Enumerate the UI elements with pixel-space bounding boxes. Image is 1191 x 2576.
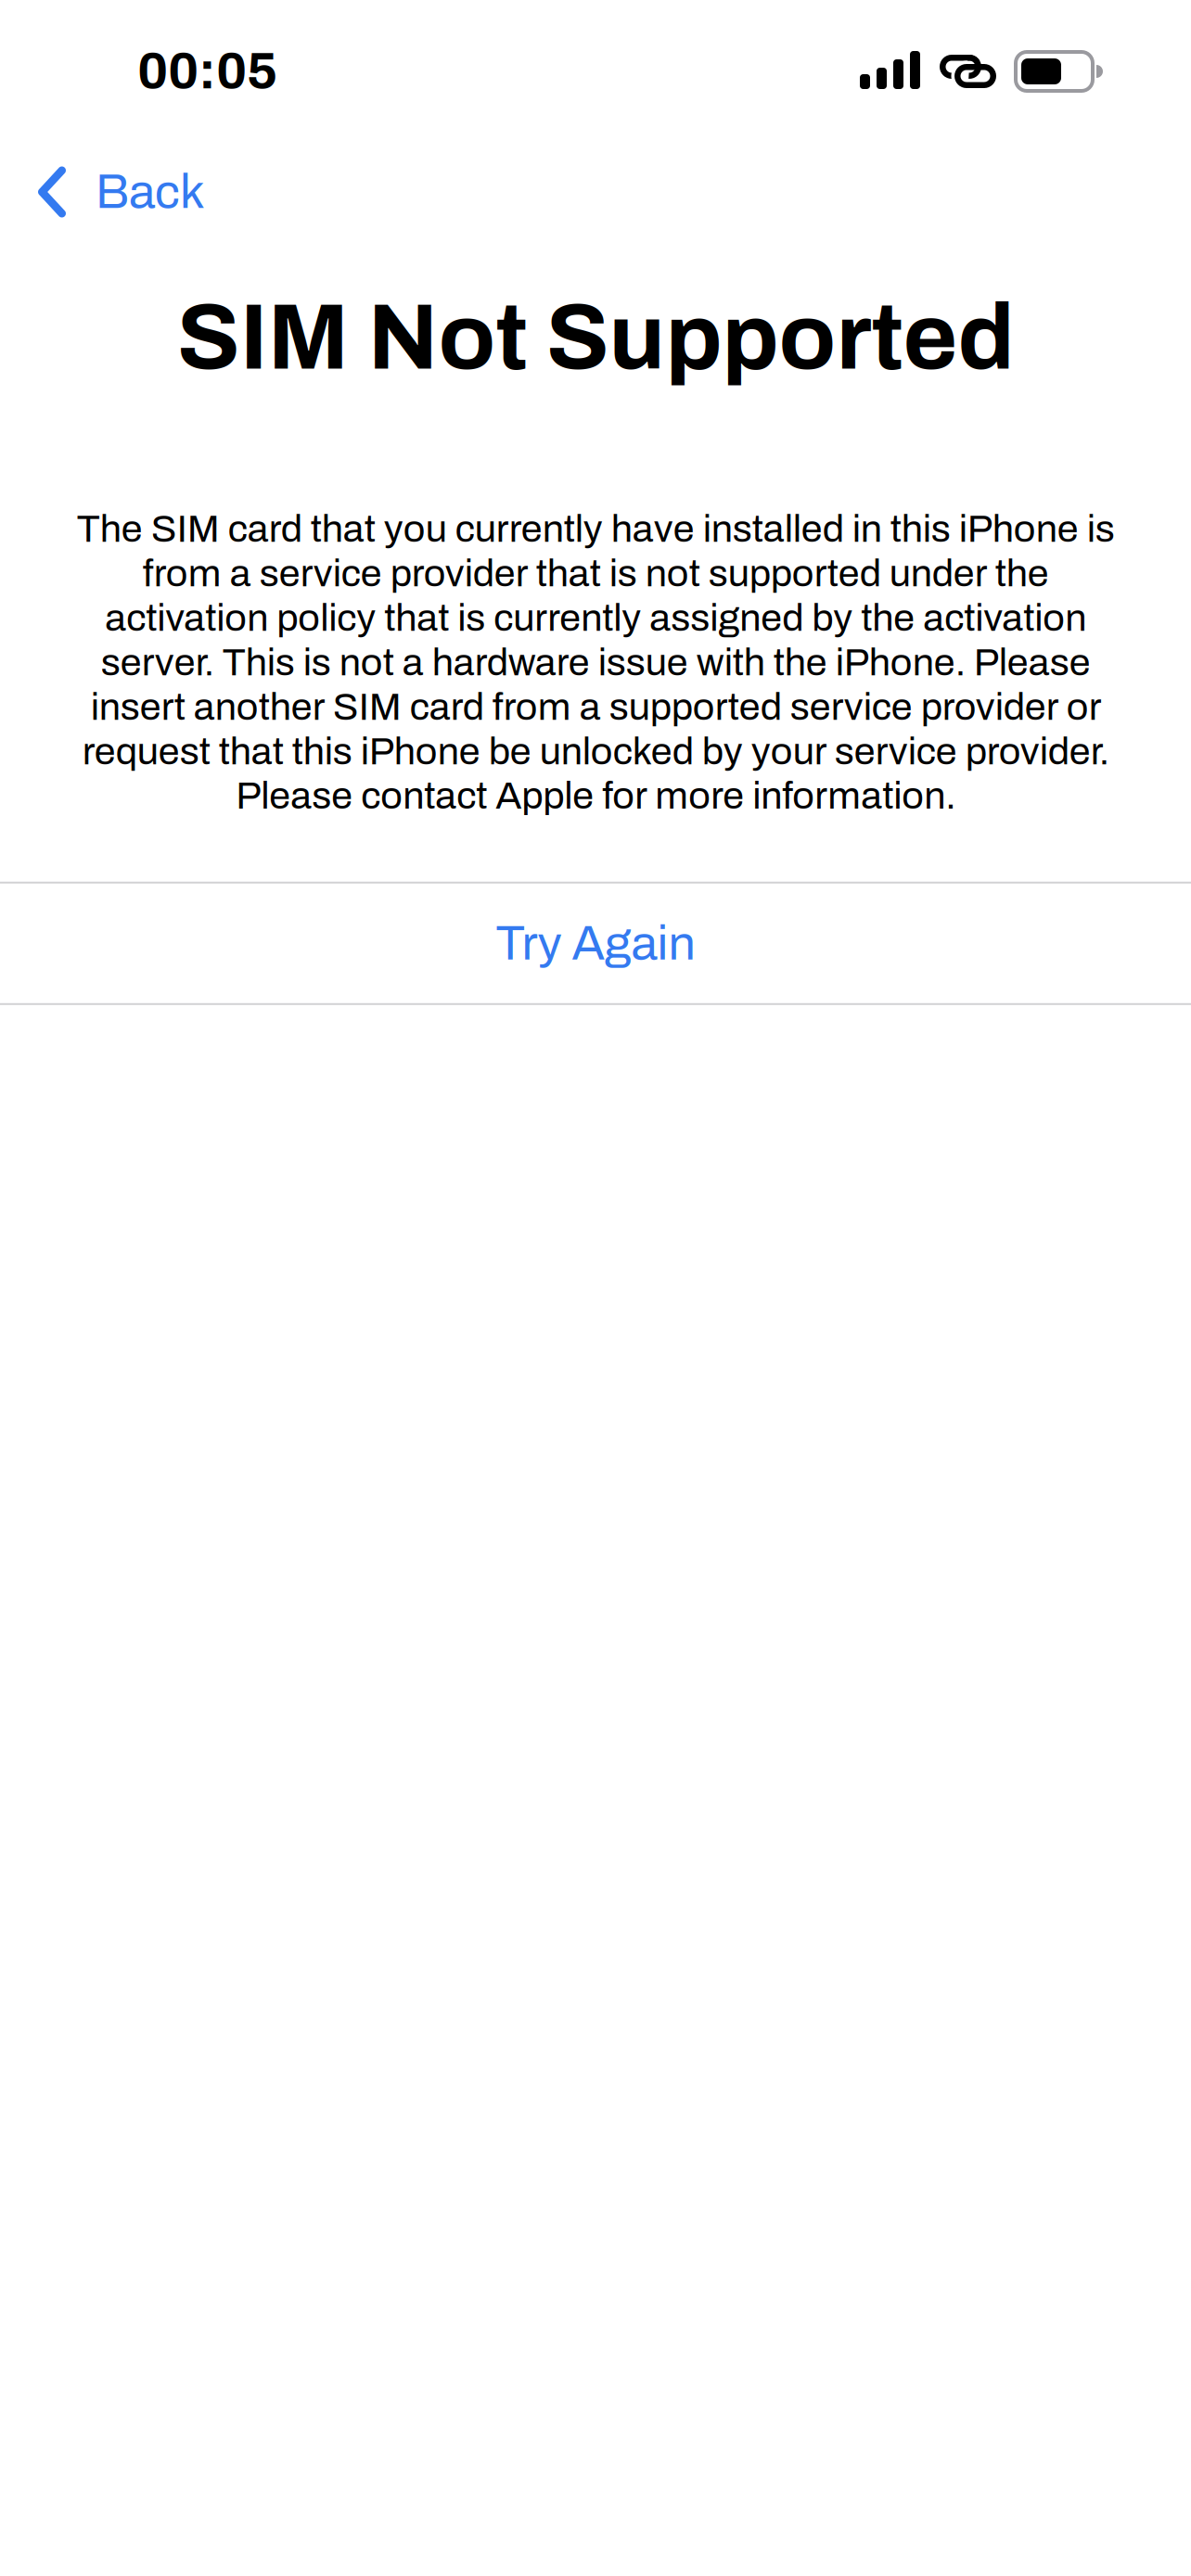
button[interactable]: Back [0, 151, 233, 233]
staticText: SIM Not Supported [177, 287, 1014, 388]
staticText: Back [96, 166, 205, 218]
staticText: Try Again [496, 917, 695, 970]
button[interactable]: Try Again [0, 884, 1191, 1003]
staticText: 00:05 [137, 43, 277, 99]
staticText: The SIM card that you currently have ins… [77, 508, 1114, 817]
